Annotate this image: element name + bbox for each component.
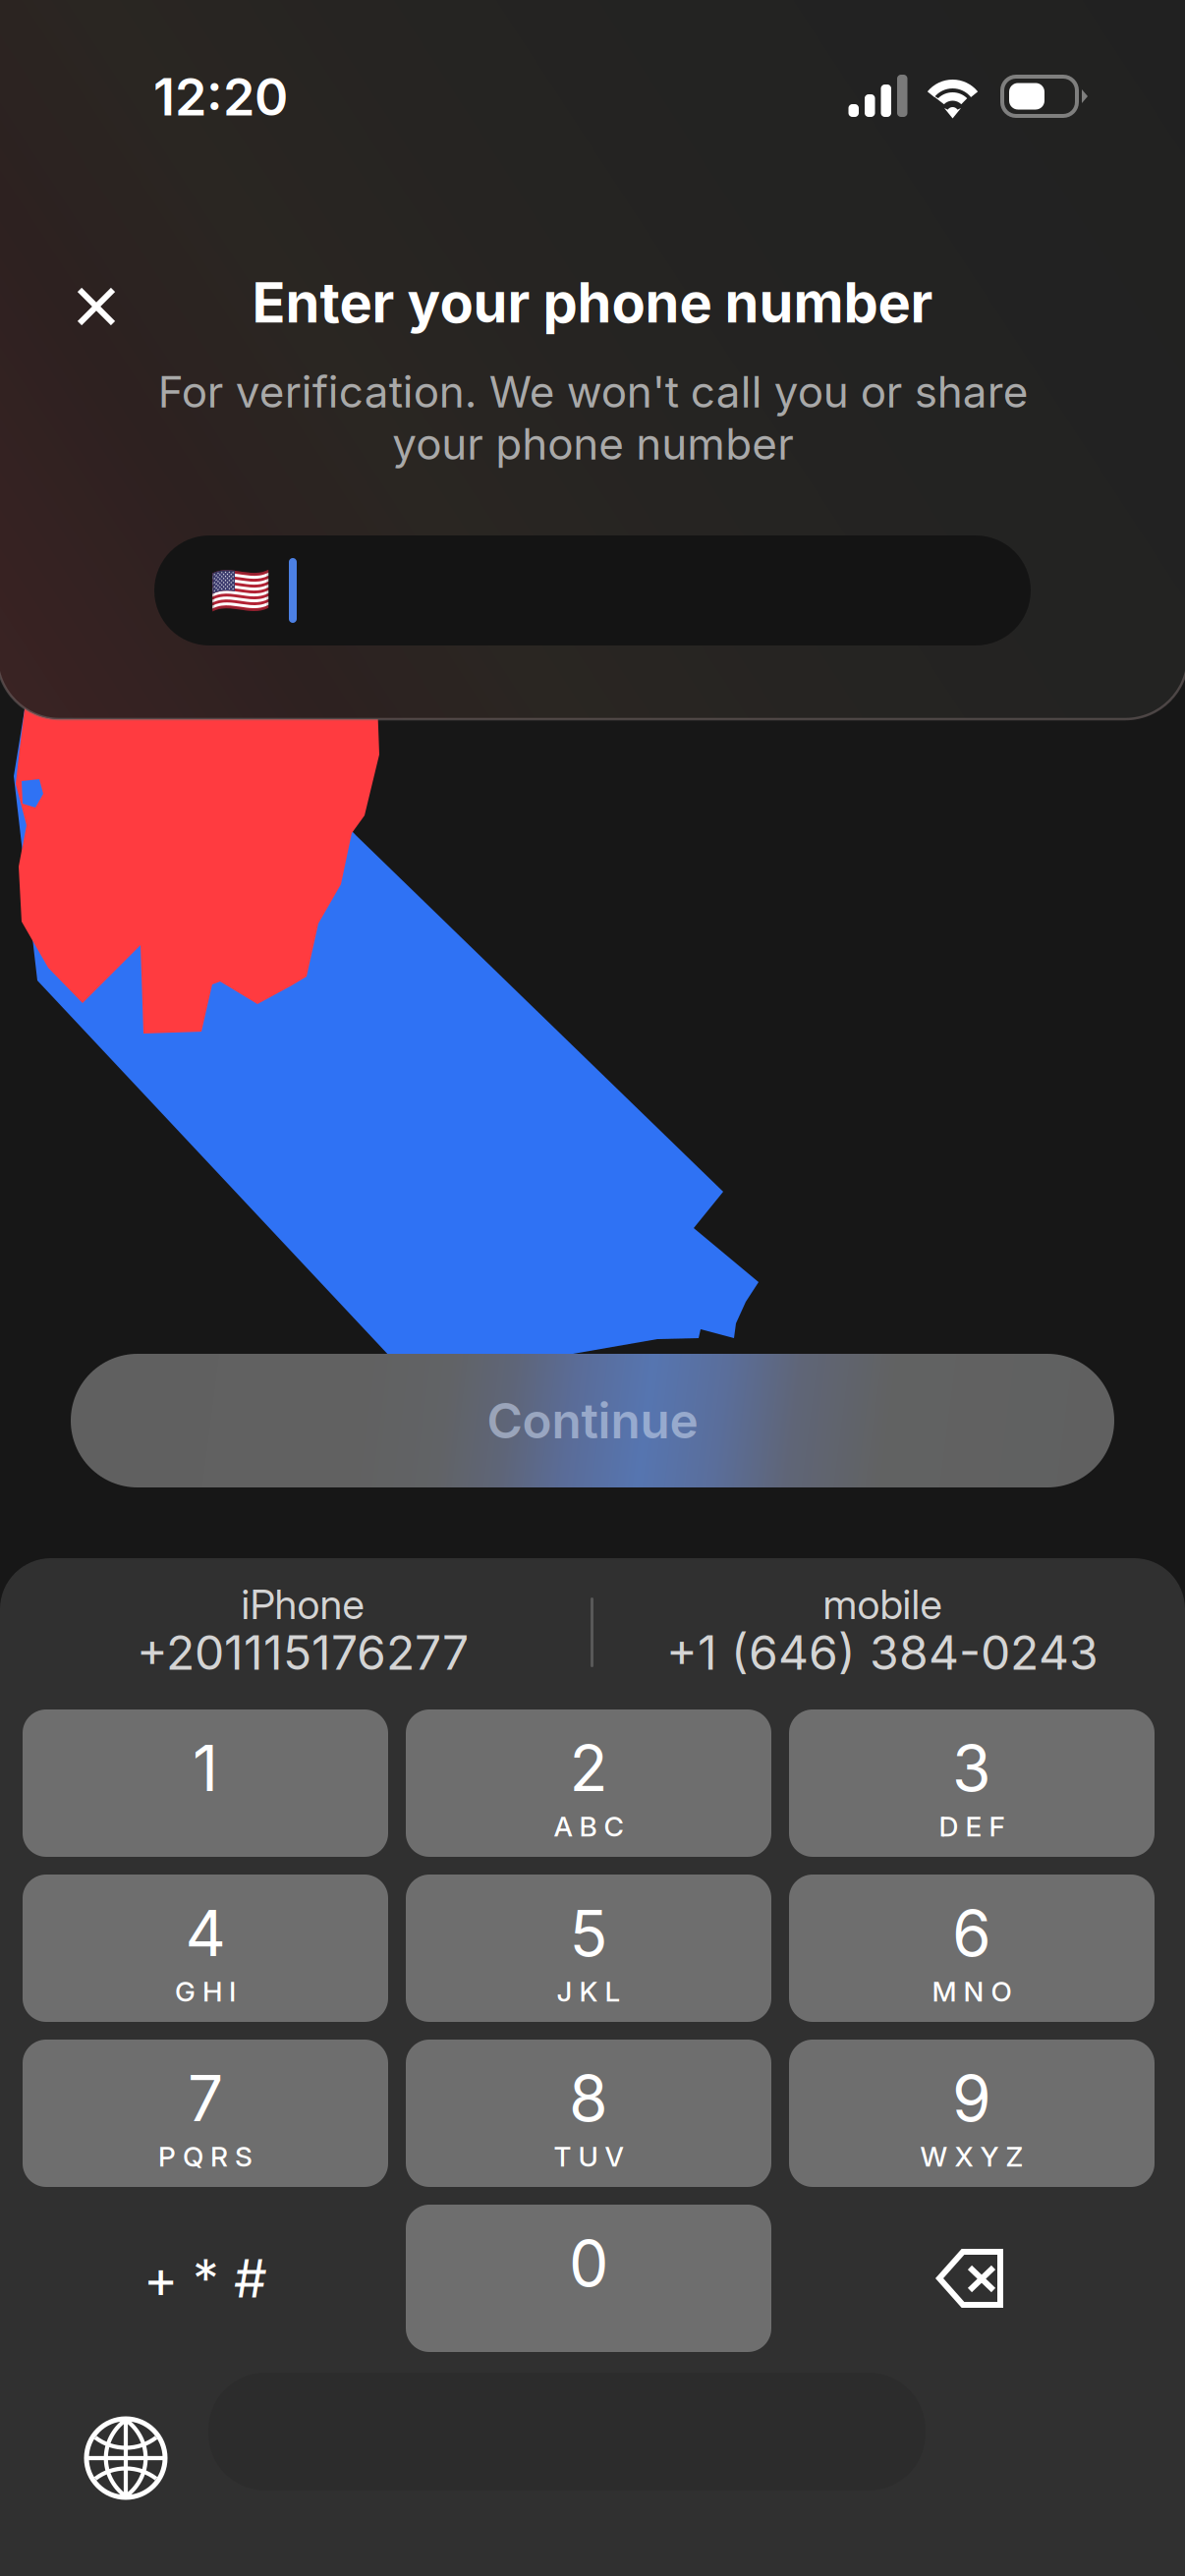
staticText: 🇺🇸: [210, 562, 270, 619]
button[interactable]: Delete: [789, 2205, 1155, 2352]
staticText: Continue: [487, 1391, 698, 1450]
button[interactable]: 3: [789, 1709, 1155, 1857]
staticText: 8: [569, 2060, 608, 2136]
button[interactable]: 6: [789, 1875, 1155, 2022]
staticText: +1 (646) 384-0243: [666, 1624, 1099, 1681]
button[interactable]: + * #: [23, 2205, 388, 2352]
button[interactable]: 7: [23, 2040, 388, 2187]
staticText: MNO: [932, 1975, 1012, 2008]
staticText: 2: [569, 1730, 608, 1806]
button[interactable]: 5: [406, 1875, 771, 2022]
staticText: 9: [952, 2060, 991, 2136]
staticText: JKL: [557, 1975, 621, 2008]
staticText: 12:20: [153, 66, 288, 128]
staticText: 0: [569, 2225, 608, 2301]
staticText: 5: [569, 1895, 608, 1971]
staticText: DEF: [939, 1810, 1005, 1843]
button[interactable]: Close: [54, 264, 139, 349]
staticText: PQRS: [158, 2140, 253, 2173]
staticText: 7: [188, 2060, 223, 2136]
staticText: iPhone: [241, 1580, 364, 1629]
button[interactable]: 2: [406, 1709, 771, 1857]
button[interactable]: iPhone: [28, 1572, 578, 1709]
button[interactable]: 4: [23, 1875, 388, 2022]
button[interactable]: 8: [406, 2040, 771, 2187]
staticText: 3: [952, 1730, 991, 1806]
staticText: TUV: [554, 2140, 623, 2173]
staticText: GHI: [175, 1975, 236, 2008]
button[interactable]: mobile: [607, 1572, 1157, 1709]
staticText: mobile: [823, 1580, 942, 1629]
staticText: +201115176277: [137, 1624, 469, 1681]
staticText: For verification. We won't call you or s…: [158, 365, 1028, 470]
staticText: 1: [193, 1730, 218, 1806]
button[interactable]: 🇺🇸: [154, 535, 1031, 645]
button[interactable]: 1: [23, 1709, 388, 1857]
button[interactable]: Continue: [71, 1354, 1114, 1487]
button[interactable]: 0: [406, 2205, 771, 2352]
staticText: ABC: [554, 1810, 623, 1843]
staticText: WXYZ: [920, 2140, 1023, 2173]
staticText: 6: [952, 1895, 991, 1971]
staticText: 4: [185, 1895, 226, 1971]
staticText: Enter your phone number: [252, 269, 933, 336]
button[interactable]: 9: [789, 2040, 1155, 2187]
staticText: + * #: [143, 2247, 267, 2310]
button[interactable]: Change keyboard: [62, 2394, 190, 2522]
